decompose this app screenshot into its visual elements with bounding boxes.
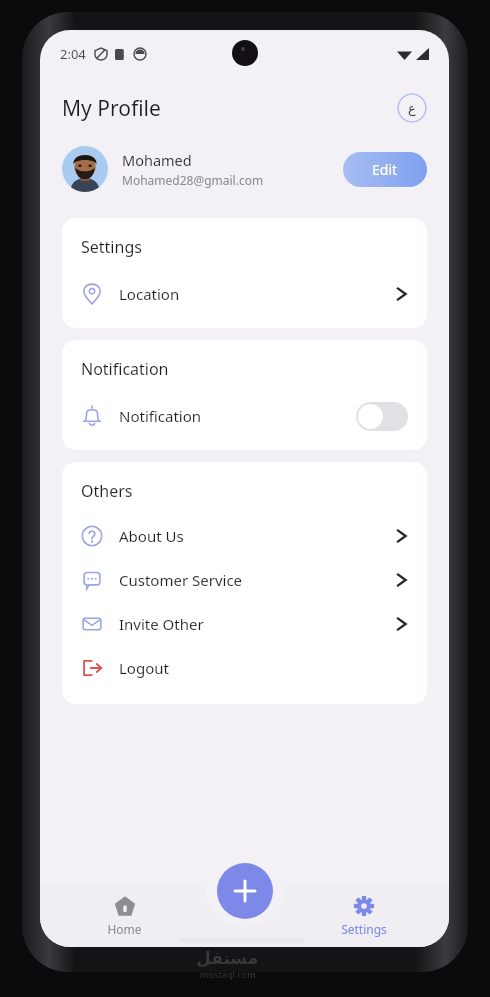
staticText: Edit (372, 160, 398, 179)
staticText: Mohamed (122, 150, 192, 170)
staticText: Invite Other (119, 614, 204, 634)
button[interactable]: Customer Service (62, 558, 427, 602)
staticText: Customer Service (119, 570, 243, 590)
button[interactable]: Language (397, 93, 427, 123)
staticText: Home (107, 921, 142, 937)
staticText: Notification (119, 406, 202, 426)
staticText: My Profile (62, 94, 161, 123)
staticText: مستقل (196, 948, 259, 968)
staticText: mostaql.com (200, 968, 256, 980)
staticText: Mohamed28@gmail.com (122, 172, 264, 188)
button[interactable]: Add (217, 863, 273, 919)
staticText: Others (81, 480, 133, 502)
staticText: Logout (119, 658, 169, 678)
staticText: 2:04 (60, 45, 86, 63)
button[interactable]: Edit (343, 152, 427, 187)
staticText: Location (119, 284, 180, 304)
button[interactable]: Notification toggle (356, 402, 408, 431)
staticText: Settings (81, 236, 142, 258)
button[interactable]: About Us (62, 514, 427, 558)
button[interactable]: Logout (62, 646, 427, 690)
staticText: Notification (81, 358, 169, 380)
button[interactable]: Notification (62, 394, 427, 438)
staticText: Settings (341, 921, 387, 937)
button[interactable]: Location (62, 272, 427, 316)
staticText: About Us (119, 526, 184, 546)
button[interactable]: Settings (279, 885, 449, 947)
staticText: ع (408, 101, 416, 116)
button[interactable]: Home (40, 885, 209, 947)
button[interactable]: Invite Other (62, 602, 427, 646)
